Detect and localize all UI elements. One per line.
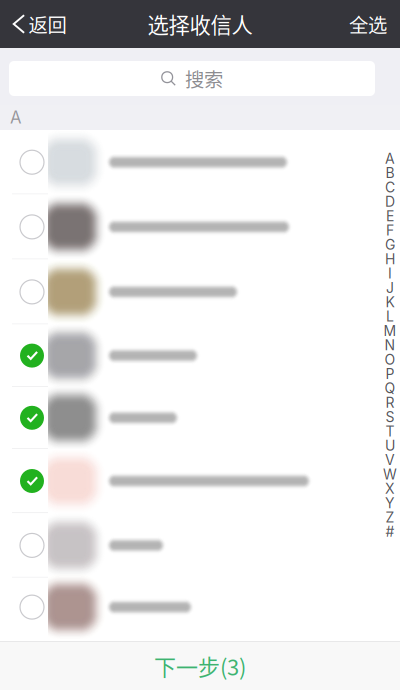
staticText: W: [383, 466, 397, 483]
staticText: X: [385, 480, 395, 497]
staticText: E: [386, 208, 394, 224]
button[interactable]: [0, 578, 400, 637]
staticText: M: [383, 322, 396, 339]
staticText: 选择收信人: [147, 9, 252, 39]
staticText: U: [385, 437, 395, 454]
button[interactable]: [0, 259, 400, 324]
staticText: Q: [384, 380, 395, 397]
staticText: P: [385, 365, 394, 382]
staticText: J: [386, 279, 394, 296]
staticText: S: [385, 408, 394, 425]
button[interactable]: 下一步(3): [0, 642, 400, 690]
staticText: R: [385, 394, 394, 411]
button[interactable]: [0, 194, 400, 259]
staticText: I: [388, 265, 392, 282]
button[interactable]: [0, 324, 400, 387]
staticText: A: [10, 107, 21, 128]
button[interactable]: 返回: [0, 0, 80, 48]
staticText: G: [385, 236, 395, 253]
staticText: A: [385, 150, 395, 167]
staticText: O: [384, 351, 395, 368]
button[interactable]: [0, 449, 400, 513]
staticText: 全选: [349, 10, 387, 38]
staticText: K: [385, 294, 394, 311]
staticText: N: [384, 337, 395, 354]
staticText: L: [386, 308, 394, 325]
button[interactable]: [0, 513, 400, 578]
staticText: T: [385, 423, 394, 440]
staticText: V: [385, 452, 395, 468]
button[interactable]: 全选: [335, 0, 400, 48]
staticText: 下一步(3): [154, 650, 246, 682]
staticText: H: [385, 251, 395, 268]
staticText: 返回: [28, 10, 66, 38]
staticText: B: [385, 165, 394, 181]
staticText: #: [385, 523, 394, 540]
staticText: C: [385, 179, 395, 196]
staticText: D: [385, 193, 395, 210]
staticText: F: [386, 222, 394, 239]
staticText: Z: [385, 509, 394, 526]
staticText: Y: [385, 495, 395, 511]
button[interactable]: [0, 130, 400, 194]
button[interactable]: [0, 387, 400, 449]
staticText: 搜索: [185, 64, 223, 92]
